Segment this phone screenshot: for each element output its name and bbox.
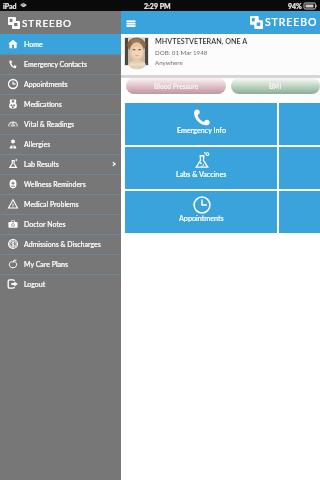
staticText: Appointments: [24, 80, 68, 88]
staticText: Appointments: [179, 214, 224, 223]
button[interactable]: Medications: [0, 94, 121, 114]
staticText: Vital & Readings: [24, 120, 75, 128]
staticText: My Care Plans: [24, 260, 68, 268]
button[interactable]: Emergency Contacts: [0, 54, 121, 74]
button[interactable]: Menu: [125, 17, 137, 29]
button[interactable]: Lab Results: [0, 154, 121, 174]
button[interactable]: Home: [0, 34, 121, 54]
staticText: MHVTESTVETERAN, ONE A: [155, 37, 248, 46]
staticText: 2:29 PM: [144, 2, 171, 10]
staticText: STREEBO: [265, 16, 318, 29]
button[interactable]: Doctor Notes: [0, 214, 121, 234]
button[interactable]: Emergency Info: [125, 103, 277, 145]
staticText: Medications: [24, 100, 62, 108]
staticText: Labs & Vaccines: [176, 170, 227, 179]
staticText: Emergency Info: [177, 126, 226, 135]
button[interactable]: Appointments: [125, 191, 277, 233]
button[interactable]: BMI: [231, 78, 320, 94]
button[interactable]: Allergies: [0, 134, 121, 154]
staticText: Home: [24, 40, 43, 48]
staticText: Emergency Contacts: [24, 60, 87, 68]
staticText: iPad: [3, 2, 17, 10]
staticText: Wellness Reminders: [24, 180, 86, 188]
button[interactable]: Appointments: [0, 74, 121, 94]
staticText: Allergies: [24, 140, 51, 148]
staticText: STREEBO: [22, 17, 73, 29]
button[interactable]: Admissions & Discharges: [0, 234, 121, 254]
staticText: DOB: 01 Mar 1948: [155, 49, 208, 56]
staticText: Doctor Notes: [24, 220, 66, 228]
staticText: Lab Results: [24, 160, 59, 168]
button[interactable]: Logout: [0, 274, 121, 294]
button[interactable]: My Care Plans: [0, 254, 121, 274]
staticText: Blood Pressure: [154, 82, 199, 90]
button[interactable]: Blood Pressure: [126, 78, 226, 94]
staticText: Logout: [24, 280, 46, 288]
button[interactable]: Vital & Readings: [0, 114, 121, 134]
staticText: Anywhere: [155, 59, 183, 66]
staticText: 94%: [288, 2, 302, 10]
button[interactable]: Medical Problems: [0, 194, 121, 214]
staticText: Medical Problems: [24, 200, 79, 208]
button[interactable]: Wellness Reminders: [0, 174, 121, 194]
button[interactable]: Labs & Vaccines: [125, 147, 277, 189]
staticText: BMI: [269, 82, 282, 90]
staticText: Admissions & Discharges: [24, 240, 101, 248]
